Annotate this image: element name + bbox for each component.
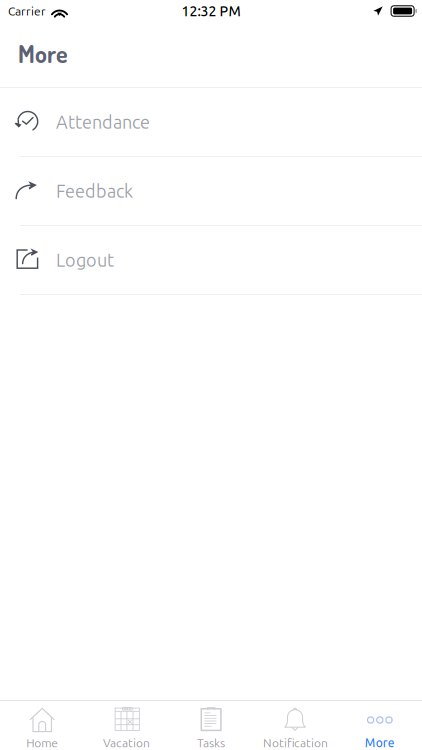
staticText: Notification (263, 736, 328, 749)
staticText: Carrier (8, 4, 46, 18)
button[interactable]: Home (0, 701, 84, 750)
button[interactable]: Vacation (84, 701, 169, 750)
staticText: Vacation (103, 736, 150, 749)
button[interactable]: Logout (0, 226, 422, 295)
staticText: Home (26, 736, 58, 749)
staticText: More (365, 736, 395, 749)
staticText: 12:32 PM (181, 3, 240, 19)
button[interactable]: Attendance (0, 88, 422, 157)
button[interactable]: More (338, 701, 422, 750)
button[interactable]: Notification (253, 701, 338, 750)
staticText: Tasks (197, 736, 225, 749)
staticText: More (18, 38, 68, 69)
button[interactable]: Feedback (0, 157, 422, 226)
staticText: Logout (56, 250, 114, 270)
button[interactable]: Tasks (169, 701, 253, 750)
staticText: Feedback (56, 181, 133, 201)
staticText: Attendance (56, 112, 150, 132)
